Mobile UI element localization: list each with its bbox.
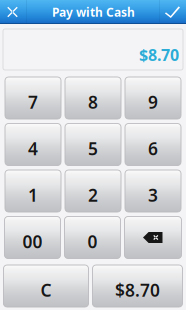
staticText: 7: [28, 90, 38, 113]
button[interactable]: 00: [4, 216, 60, 258]
staticText: 5: [88, 137, 98, 160]
staticText: Pay with Cash: [52, 4, 135, 20]
staticText: 4: [28, 137, 38, 160]
button[interactable]: C: [3, 265, 88, 307]
button[interactable]: $8.70: [92, 265, 182, 307]
button[interactable]: Confirm: [161, 0, 186, 24]
staticText: 3: [148, 183, 158, 206]
button[interactable]: 5: [65, 123, 121, 165]
button[interactable]: 0: [64, 216, 120, 258]
button[interactable]: 4: [5, 123, 61, 165]
button[interactable]: 6: [125, 123, 181, 165]
staticText: $8.70: [139, 44, 179, 65]
staticText: 0: [87, 230, 97, 253]
staticText: 2: [88, 183, 98, 206]
button[interactable]: Cancel: [0, 0, 26, 24]
staticText: 6: [148, 137, 158, 160]
button[interactable]: 7: [5, 77, 61, 119]
button[interactable]: 9: [125, 77, 181, 119]
button[interactable]: 1: [5, 170, 61, 212]
staticText: 1: [28, 183, 38, 206]
button[interactable]: 2: [65, 170, 121, 212]
staticText: C: [40, 278, 51, 301]
button[interactable]: 8: [65, 77, 121, 119]
staticText: 00: [22, 230, 42, 253]
staticText: $8.70: [115, 278, 160, 301]
staticText: 8: [88, 90, 98, 113]
staticText: 9: [148, 90, 158, 113]
button[interactable]: 3: [125, 170, 181, 212]
button[interactable]: [124, 216, 181, 258]
